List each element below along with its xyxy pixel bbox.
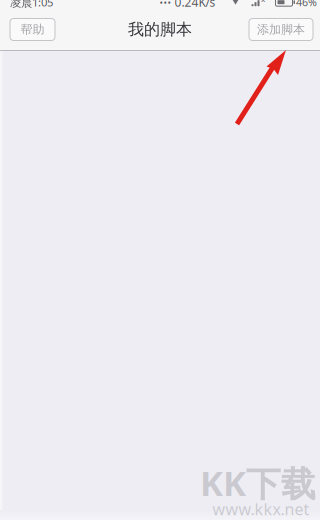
staticText: 46% xyxy=(296,0,317,9)
staticText: www.kkx.net xyxy=(212,498,309,520)
button[interactable]: 添加脚本 xyxy=(249,18,313,40)
button[interactable]: 帮助 xyxy=(10,18,55,40)
staticText: ••• xyxy=(159,0,171,8)
staticText: 凌晨1:05 xyxy=(10,0,53,10)
staticText: 添加脚本 xyxy=(257,22,305,37)
staticText: 我的脚本 xyxy=(128,19,192,40)
staticText: 帮助 xyxy=(20,22,44,37)
staticText: 0.24K/s xyxy=(171,0,215,10)
staticText: × xyxy=(260,0,265,6)
staticText: KK下载 xyxy=(200,459,316,506)
